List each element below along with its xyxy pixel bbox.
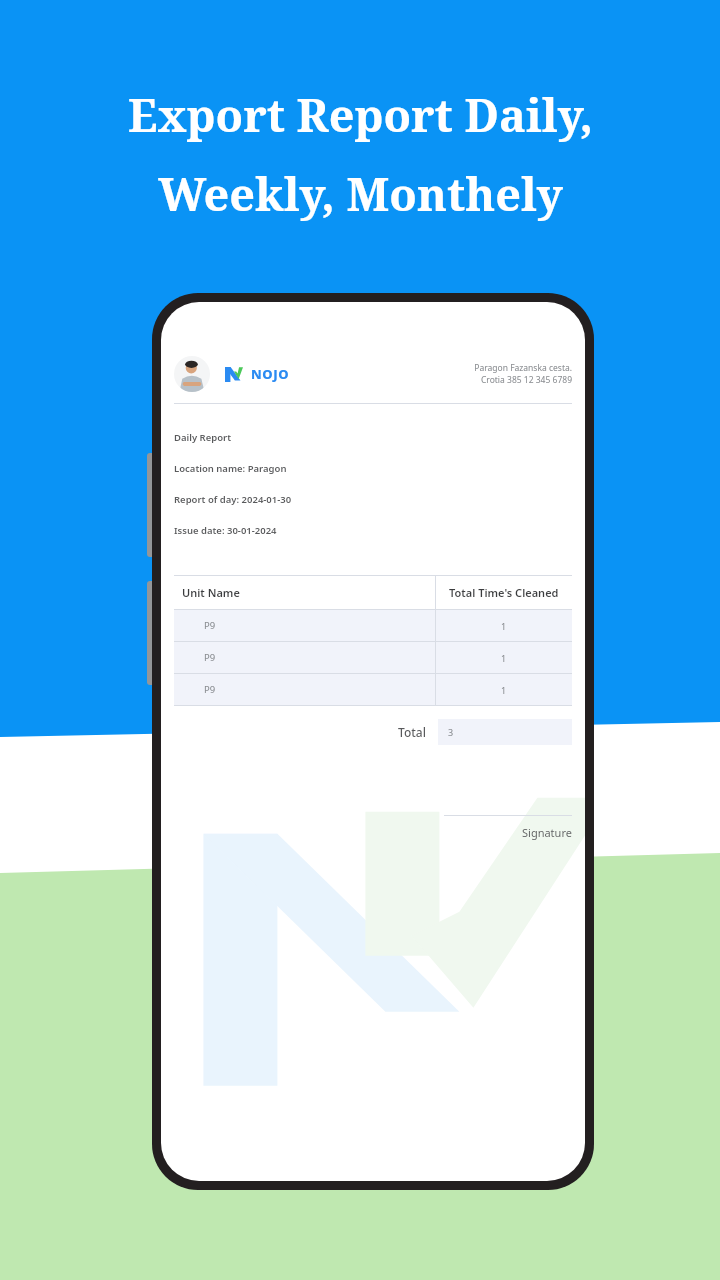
button[interactable]: P9: [174, 642, 572, 673]
staticText: Export Report Daily,: [128, 84, 593, 145]
staticText: Location name: Paragon: [174, 462, 287, 475]
staticText: Signature: [522, 825, 572, 840]
button[interactable]: NOJO logo: [225, 367, 243, 382]
staticText: P9: [204, 619, 216, 632]
staticText: Issue date: 30-01-2024: [174, 524, 277, 537]
staticText: P9: [204, 683, 216, 696]
staticText: 1: [501, 652, 507, 664]
staticText: Report of day: 2024-01-30: [174, 493, 292, 506]
staticText: Weekly, Monthely: [158, 163, 563, 224]
staticText: Unit Name: [182, 585, 240, 600]
button[interactable]: P9: [174, 610, 572, 641]
staticText: Total Time's Cleaned: [449, 585, 559, 600]
staticText: Daily Report: [174, 431, 232, 444]
button[interactable]: P9: [174, 674, 572, 705]
staticText: Total: [398, 724, 426, 740]
staticText: P9: [204, 651, 216, 664]
staticText: 3: [448, 726, 454, 738]
button[interactable]: Profile photo: [174, 356, 210, 392]
staticText: Crotia 385 12 345 6789: [480, 374, 572, 386]
staticText: NOJO: [251, 365, 290, 383]
staticText: 1: [501, 684, 507, 696]
staticText: 1: [501, 620, 507, 632]
staticText: Paragon Fazanska cesta.: [474, 362, 572, 374]
